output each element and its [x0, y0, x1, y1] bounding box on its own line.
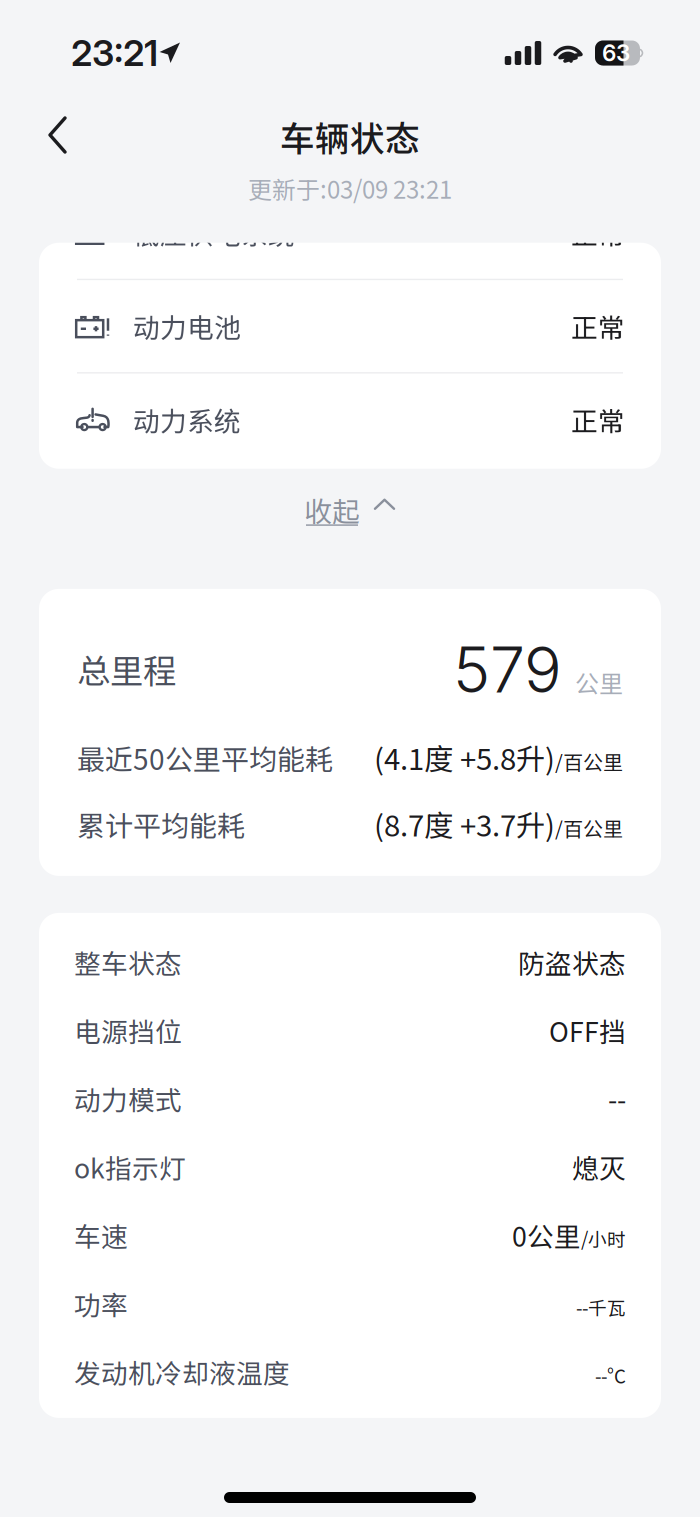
staticText: 收起 — [304, 490, 360, 530]
staticText: 车辆状态 — [280, 111, 420, 162]
staticText: 正常 — [571, 307, 625, 345]
staticText: 低压供电系统 — [133, 213, 295, 252]
button[interactable]: 发动机冷却液温度 — [39, 1338, 661, 1406]
staticText: 整车状态 — [74, 943, 182, 981]
staticText: 更新于:03/09 23:21 — [248, 171, 452, 206]
button[interactable]: ok指示灯 — [39, 1133, 661, 1201]
staticText: OFF挡 — [549, 1011, 626, 1050]
staticText: (8.7度 +3.7升) — [374, 802, 555, 845]
staticText: 总里程 — [77, 645, 176, 693]
staticText: 63 — [602, 39, 630, 67]
staticText: 23:21 — [71, 31, 158, 75]
button[interactable]: 动力系统 — [39, 374, 661, 466]
staticText: 0公里 — [512, 1216, 581, 1254]
button[interactable]: 功率 — [39, 1269, 661, 1338]
staticText: 579 — [453, 632, 562, 708]
button[interactable]: 电源挡位 — [39, 996, 661, 1064]
staticText: 正常 — [571, 400, 625, 439]
staticText: /小时 — [581, 1225, 626, 1252]
button[interactable]: 低压供电系统 — [39, 187, 661, 279]
staticText: /百公里 — [555, 747, 623, 776]
button[interactable]: 动力电池 — [39, 280, 661, 372]
staticText: 车速 — [74, 1216, 128, 1254]
staticText: 最近50公里平均能耗 — [77, 737, 333, 778]
button[interactable]: Back — [24, 104, 92, 166]
staticText: /百公里 — [555, 813, 623, 842]
staticText: 公里 — [575, 665, 623, 700]
button[interactable]: 收起 — [288, 480, 412, 536]
staticText: --°C — [595, 1362, 626, 1389]
staticText: 正常 — [571, 213, 625, 252]
staticText: (4.1度 +5.8升) — [374, 736, 555, 778]
button[interactable]: 动力模式 — [39, 1064, 661, 1133]
staticText: 累计平均能耗 — [77, 804, 245, 844]
staticText: 熄灭 — [572, 1148, 626, 1186]
staticText: 电源挡位 — [74, 1011, 182, 1050]
staticText: 发动机冷却液温度 — [74, 1352, 290, 1391]
button[interactable]: 整车状态 — [39, 928, 661, 996]
staticText: 动力系统 — [133, 400, 241, 439]
staticText: 防盗状态 — [518, 943, 626, 981]
staticText: 功率 — [74, 1284, 128, 1323]
staticText: ok指示灯 — [74, 1148, 186, 1186]
staticText: 动力模式 — [74, 1079, 182, 1118]
staticText: --千瓦 — [576, 1293, 626, 1320]
staticText: 动力电池 — [133, 307, 241, 345]
staticText: -- — [608, 1079, 626, 1118]
button[interactable]: 车速 — [39, 1201, 661, 1269]
